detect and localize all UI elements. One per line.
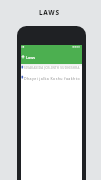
- staticText: Dhayei jalka Koshu faakhto Avayioada Can…: [24, 76, 85, 81]
- staticText: LAWS: [39, 8, 60, 17]
- staticText: Laws: [26, 55, 36, 60]
- staticText: SIVAKASIDA JOS.INTH SUDHISHRA AHEL.ALA K…: [24, 66, 85, 70]
